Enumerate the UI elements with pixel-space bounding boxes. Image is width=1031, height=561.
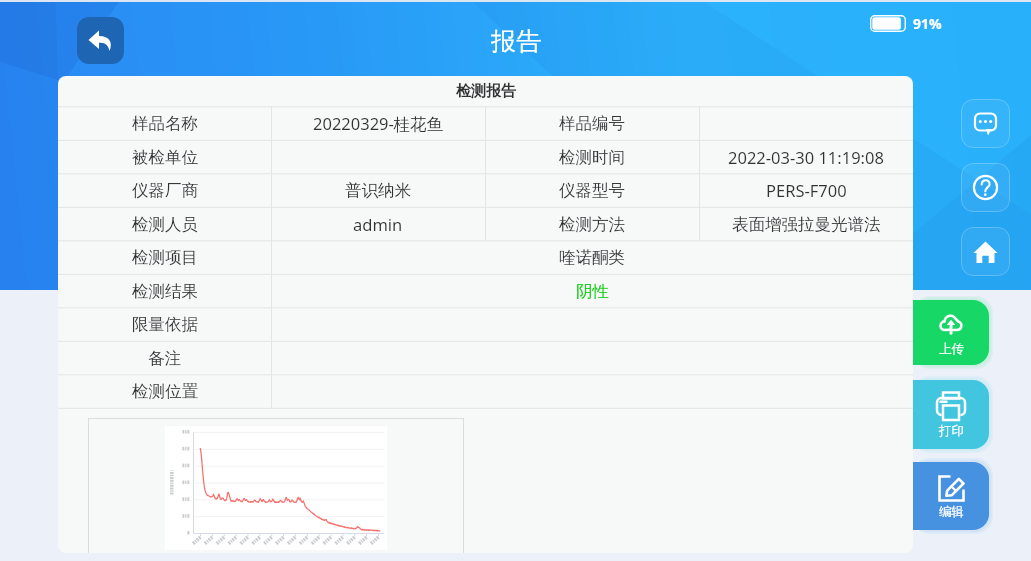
staticText: 样品编号	[559, 113, 625, 134]
staticText: 备注	[148, 348, 181, 369]
staticText: 上传	[939, 341, 964, 357]
staticText: 被检单位	[132, 147, 198, 168]
staticText: PERS-F700	[766, 179, 847, 201]
staticText: 检测方法	[559, 214, 625, 235]
staticText: 样品名称	[132, 113, 198, 134]
button[interactable]: Print	[913, 380, 989, 449]
staticText: 20220329-桂花鱼	[313, 112, 444, 135]
staticText: 检测结果	[132, 281, 198, 302]
staticText: 检测项目	[132, 247, 198, 268]
staticText: 编辑	[939, 504, 964, 520]
staticText: 打印	[939, 423, 964, 439]
staticText: 仪器厂商	[132, 180, 198, 201]
staticText: 检测报告	[456, 82, 516, 101]
staticText: 仪器型号	[559, 180, 625, 201]
staticText: 普识纳米	[345, 180, 411, 201]
staticText: 喹诺酮类	[559, 247, 625, 268]
staticText: 91%	[913, 14, 942, 33]
button[interactable]: Messages	[961, 99, 1010, 148]
staticText: 2022-03-30 11:19:08	[728, 146, 884, 168]
staticText: 报告	[491, 26, 541, 57]
button[interactable]: Home	[961, 227, 1010, 276]
button[interactable]: Help	[961, 163, 1010, 212]
staticText: 阴性	[576, 281, 609, 302]
staticText: 限量依据	[132, 314, 198, 335]
button[interactable]: Edit	[913, 462, 989, 530]
staticText: 检测人员	[132, 214, 198, 235]
staticText: 表面增强拉曼光谱法	[732, 214, 881, 235]
button[interactable]: Upload	[913, 300, 989, 365]
button[interactable]: Back	[77, 17, 124, 64]
staticText: admin	[353, 213, 403, 235]
staticText: 检测时间	[559, 147, 625, 168]
staticText: 检测位置	[132, 381, 198, 402]
